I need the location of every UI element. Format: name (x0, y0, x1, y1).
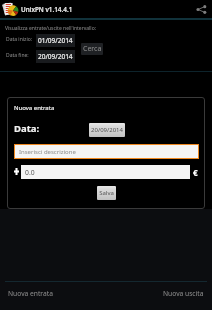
button[interactable]: Change sign (11, 165, 22, 178)
button[interactable]: Salva (97, 186, 116, 200)
staticText: Salva (99, 189, 114, 197)
button[interactable]: Share (193, 1, 209, 17)
staticText: Data fine: (6, 52, 29, 59)
staticText: Visualizza entrate/uscite nell'intervall… (5, 25, 97, 32)
button[interactable]: 20/09/2014 (89, 123, 125, 137)
staticText: Nuova entrata (14, 104, 55, 112)
button[interactable]: Inserisci descrizione (15, 145, 198, 158)
staticText: Nuova uscita (163, 289, 204, 298)
button[interactable]: Nuova entrata (0, 279, 106, 307)
staticText: € (193, 167, 198, 178)
staticText: Nuova entrata (8, 289, 53, 298)
button[interactable]: 0.0 (21, 165, 190, 179)
button[interactable]: 20/09/2014 (36, 50, 75, 63)
staticText: Cerca (83, 44, 102, 54)
staticText: 20/09/2014 (91, 126, 123, 134)
staticText: 01/09/2014 (38, 36, 73, 45)
staticText: UnixPN v1.14.4.1 (21, 5, 73, 14)
staticText: Data inizio: (6, 36, 33, 43)
staticText: 0.0 (25, 168, 35, 177)
staticText: 20/09/2014 (38, 52, 73, 61)
button[interactable]: Cerca (81, 43, 103, 55)
staticText: Inserisci descrizione (19, 148, 76, 156)
button[interactable]: 01/09/2014 (36, 34, 75, 47)
button[interactable]: Nuova uscita (106, 279, 212, 307)
staticText: Data: (14, 122, 40, 135)
